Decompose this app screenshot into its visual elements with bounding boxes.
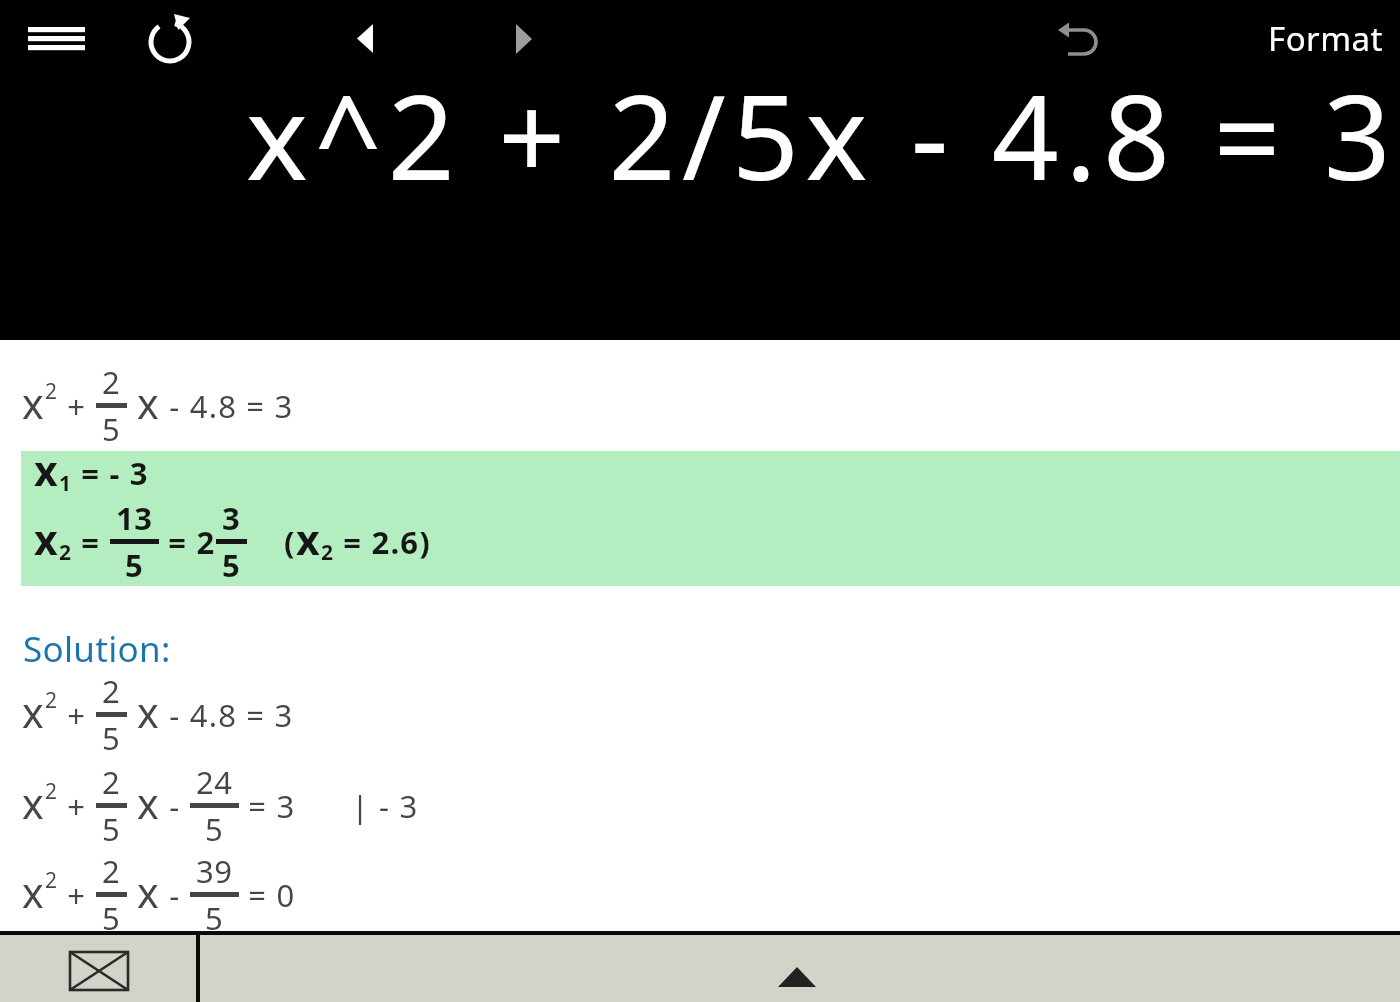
staticText: 2 [321,538,334,567]
staticText: 2 [102,850,121,892]
staticText: 2 [102,761,121,803]
staticText: + [58,874,96,916]
staticText: 13 [116,497,153,539]
staticText: 2 [45,686,58,715]
button[interactable]: Format [1268,16,1384,61]
staticText: | - 3 [296,785,419,827]
staticText: x [22,775,45,831]
staticText: 5 [102,808,121,850]
button[interactable] [144,12,196,64]
staticText: - [160,874,190,916]
button[interactable] [1048,12,1104,64]
staticText: - 4.8 = 3 [160,385,294,427]
staticText: 24 [196,761,233,803]
staticText: 5 [205,808,224,850]
staticText: 2 [102,361,121,403]
staticText: - [160,785,190,827]
staticText: 5 [222,544,241,586]
staticText: ( [247,521,296,563]
staticText: 5 [125,544,144,586]
staticText: 2 [45,377,58,406]
staticText: + [58,785,96,827]
staticText: 3 [222,497,241,539]
button[interactable] [21,451,1400,586]
staticText: x [22,375,45,431]
staticText: 5 [205,897,224,939]
staticText: Format [1268,16,1384,61]
button[interactable] [740,945,854,995]
staticText: 2 [102,670,121,712]
staticText: 2 [59,538,72,567]
staticText: = - 3 [72,452,149,494]
staticText: = 2 [159,521,216,563]
staticText: x [137,375,160,431]
staticText: = 2.6) [334,521,431,563]
button[interactable] [20,18,92,60]
button[interactable] [504,14,546,64]
staticText: 39 [196,850,233,892]
staticText: = [72,521,110,563]
staticText: x [296,511,321,567]
staticText: + [58,385,96,427]
staticText: + [58,694,96,736]
staticText: 2 [45,866,58,895]
staticText: = 3 [239,785,296,827]
staticText: x [22,684,45,740]
staticText: Solution: [23,625,171,673]
staticText: = 0 [239,874,296,916]
staticText: x [34,442,59,498]
button[interactable] [345,14,387,64]
staticText: - 4.8 = 3 [160,694,294,736]
staticText: 5 [102,897,121,939]
staticText: x [22,864,45,920]
staticText: x [137,684,160,740]
staticText: 5 [102,408,121,450]
button[interactable] [0,935,196,1002]
staticText: x^2 + 2/5x - 4.8 = 3 [246,55,1398,214]
staticText: 1 [59,469,72,498]
staticText: x [137,775,160,831]
staticText: 2 [45,777,58,806]
staticText: 5 [102,717,121,759]
staticText: x [34,511,59,567]
staticText: x [137,864,160,920]
